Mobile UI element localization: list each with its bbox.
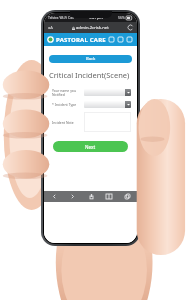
button[interactable]: Back xyxy=(46,191,62,202)
button[interactable]: Tabs xyxy=(119,191,135,202)
button[interactable]: Bookmarks xyxy=(101,191,117,202)
staticText: Your name you Notified xyxy=(52,88,77,97)
button[interactable]: Next xyxy=(53,141,128,152)
staticText: Telstra Wi-Fi Call xyxy=(48,15,74,20)
button[interactable]: aA xyxy=(48,22,133,33)
button[interactable] xyxy=(84,101,131,108)
staticText: PASTORAL CARE xyxy=(56,36,106,44)
staticText: aA xyxy=(48,25,53,30)
staticText: Incident Note xyxy=(52,120,74,125)
button[interactable]: Back xyxy=(49,55,132,63)
staticText: Next xyxy=(85,144,96,150)
staticText: admin.2crisk.net xyxy=(76,25,109,31)
button[interactable]: Forward xyxy=(64,191,80,202)
button[interactable]: Share xyxy=(83,191,99,202)
button[interactable]: Logout xyxy=(125,35,134,44)
staticText: * Incident Type xyxy=(52,102,77,107)
staticText: Back xyxy=(86,56,96,62)
button[interactable]: Help xyxy=(107,35,116,44)
button[interactable] xyxy=(84,89,131,96)
staticText: 56% xyxy=(118,15,125,20)
other: Pastoral Care logo xyxy=(47,36,54,43)
other: Reload xyxy=(128,25,133,30)
staticText: Critical Incident(Scene) xyxy=(49,70,130,80)
staticText: 9:41 pm xyxy=(89,15,103,20)
button[interactable] xyxy=(84,112,131,132)
button[interactable]: Notifications xyxy=(116,35,125,44)
